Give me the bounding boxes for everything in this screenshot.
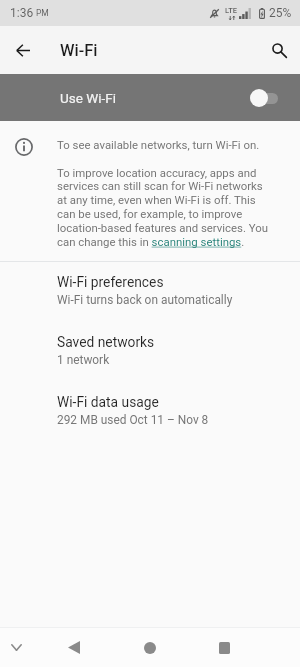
staticText: 1 network <box>57 353 110 367</box>
button[interactable]: Wi-Fi data usage <box>0 382 300 442</box>
staticText: 1:36 <box>10 6 34 20</box>
staticText: Wi-Fi turns back on automatically <box>57 293 233 307</box>
button[interactable]: Home <box>131 628 169 667</box>
staticText: To see available networks, turn Wi-Fi on… <box>57 138 260 151</box>
staticText: 292 MB used Oct 11 – Nov 8 <box>57 413 209 427</box>
button[interactable]: Back <box>55 628 93 667</box>
staticText: Use Wi-Fi <box>60 90 116 106</box>
button[interactable]: Search <box>252 26 300 74</box>
staticText: 25% <box>269 6 292 20</box>
staticText: Wi-Fi data usage <box>57 394 159 410</box>
staticText: Saved networks <box>57 334 155 350</box>
staticText: PM <box>36 8 49 18</box>
button[interactable]: Hide keyboard <box>0 628 33 667</box>
staticText: LTE <box>225 6 238 15</box>
button[interactable]: Recent apps <box>205 628 243 667</box>
staticText: Wi-Fi <box>60 41 98 60</box>
button[interactable]: Back <box>0 26 46 74</box>
staticText: To improve location accuracy, apps and s… <box>57 166 270 249</box>
button[interactable]: Wi-Fi preferences <box>0 262 300 322</box>
button[interactable]: Saved networks <box>0 322 300 382</box>
staticText: Wi-Fi preferences <box>57 274 164 290</box>
button[interactable]: Use Wi-Fi <box>0 74 300 121</box>
